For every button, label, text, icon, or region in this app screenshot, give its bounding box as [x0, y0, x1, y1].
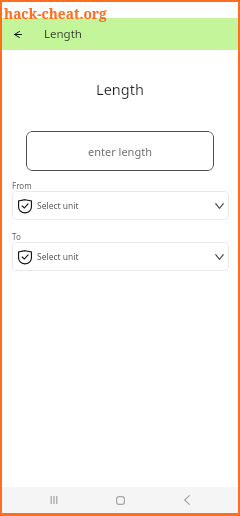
staticText: Select unit — [37, 251, 79, 263]
button[interactable]: Select unit — [12, 242, 229, 271]
button[interactable]: enter length — [26, 131, 214, 171]
staticText: Length — [44, 26, 82, 42]
button[interactable]: Navigate back — [6, 18, 29, 50]
button[interactable]: Select unit — [12, 191, 229, 220]
staticText: hack-cheat.org — [4, 4, 107, 23]
staticText: Select unit — [37, 200, 79, 212]
button[interactable]: Recent apps — [38, 487, 70, 513]
button[interactable]: Home — [104, 487, 136, 513]
button[interactable]: Back — [171, 487, 203, 513]
staticText: To — [12, 231, 21, 242]
staticText: Length — [2, 79, 238, 99]
staticText: enter length — [88, 144, 152, 159]
staticText: From — [12, 180, 32, 191]
